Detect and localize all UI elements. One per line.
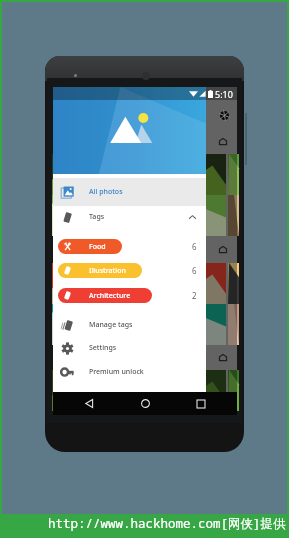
button[interactable]: Manage tags	[53, 313, 206, 337]
button[interactable]: Back	[69, 392, 109, 415]
staticText: 6	[192, 241, 197, 252]
staticText: Illustration	[89, 266, 126, 276]
staticText: Food	[89, 242, 106, 252]
button[interactable]: Architecture	[53, 284, 206, 306]
staticText: 5:10	[215, 88, 233, 100]
button[interactable]: Camera	[215, 106, 233, 124]
staticText: http://www.hackhome.com[网侠]提供	[48, 515, 286, 532]
staticText: Architecture	[89, 291, 131, 301]
staticText: All photos	[89, 187, 123, 197]
staticText: Premium unlock	[89, 367, 144, 377]
button[interactable]: Illustration	[53, 259, 206, 281]
button[interactable]: Tags	[53, 206, 206, 228]
button[interactable]: Premium unlock	[53, 360, 206, 384]
staticText: 2	[192, 290, 197, 301]
button[interactable]: All photos	[53, 178, 206, 206]
button[interactable]: Recents	[181, 392, 221, 415]
button[interactable]: Food	[53, 235, 206, 257]
button[interactable]: Home	[125, 392, 165, 415]
staticText: Settings	[89, 343, 117, 353]
staticText: Tags	[89, 212, 105, 222]
staticText: 6	[192, 265, 197, 276]
button[interactable]: Settings	[53, 336, 206, 360]
staticText: Manage tags	[89, 320, 133, 330]
